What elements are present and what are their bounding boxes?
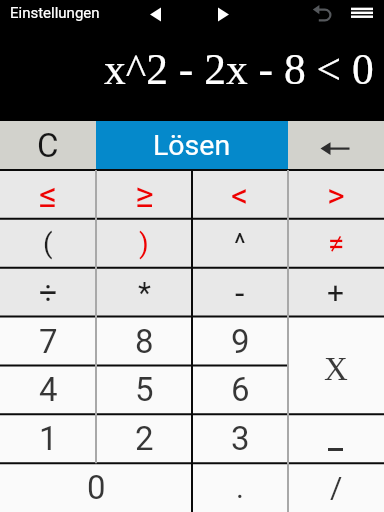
staticText: -: [235, 273, 245, 313]
staticText: /: [330, 470, 343, 505]
button[interactable]: *: [96, 268, 192, 317]
button[interactable]: X: [288, 317, 384, 415]
button[interactable]: -: [192, 268, 288, 317]
staticText: <: [231, 175, 249, 215]
button[interactable]: 4: [0, 365, 96, 414]
staticText: x^2 - 2x - 8 < 0: [104, 45, 374, 93]
staticText: .: [236, 470, 244, 505]
button[interactable]: [344, 0, 380, 28]
staticText: 4: [39, 370, 58, 409]
staticText: ÷: [39, 274, 58, 312]
staticText: 9: [231, 322, 250, 361]
staticText: 5: [135, 370, 154, 409]
button[interactable]: 2: [96, 414, 192, 463]
staticText: 0: [87, 468, 106, 507]
staticText: *: [138, 275, 151, 310]
button[interactable]: ÷: [0, 268, 96, 317]
button[interactable]: [96, 121, 288, 170]
staticText: Lösen: [153, 129, 231, 162]
button[interactable]: [0, 121, 96, 170]
button[interactable]: ≠: [288, 219, 384, 268]
button[interactable]: (: [0, 219, 96, 268]
staticText: 1: [39, 419, 58, 458]
button[interactable]: 8: [96, 317, 192, 366]
button[interactable]: ≥: [96, 170, 192, 219]
button[interactable]: .: [192, 463, 288, 512]
staticText: ≥: [135, 174, 154, 216]
button[interactable]: ): [96, 219, 192, 268]
button[interactable]: 1: [0, 414, 96, 463]
staticText: 7: [39, 322, 58, 361]
button[interactable]: 0: [0, 463, 192, 512]
button[interactable]: C: [0, 121, 96, 170]
button[interactable]: >: [288, 170, 384, 219]
staticText: ^: [234, 227, 246, 260]
button[interactable]: 9: [192, 317, 288, 366]
button[interactable]: ^: [192, 219, 288, 268]
staticText: >: [327, 175, 345, 215]
button[interactable]: Einstellungen: [4, 1, 94, 19]
staticText: X: [324, 351, 348, 388]
staticText: (: [43, 227, 53, 260]
staticText: C: [37, 126, 59, 165]
button[interactable]: [138, 0, 172, 28]
button[interactable]: Lösen: [96, 121, 288, 170]
button[interactable]: 7: [0, 317, 96, 366]
staticText: 8: [135, 322, 154, 361]
staticText: Einstellungen: [10, 4, 100, 22]
staticText: ≠: [328, 226, 345, 261]
button[interactable]: [288, 414, 384, 463]
button[interactable]: 6: [192, 365, 288, 414]
staticText: +: [327, 275, 345, 310]
staticText: ≤: [39, 174, 58, 216]
staticText: 3: [231, 419, 250, 458]
button[interactable]: [308, 0, 338, 28]
button[interactable]: 5: [96, 365, 192, 414]
button[interactable]: +: [288, 268, 384, 317]
staticText: 6: [231, 370, 250, 409]
button[interactable]: /: [288, 463, 384, 512]
button[interactable]: [288, 121, 384, 170]
button[interactable]: [206, 0, 240, 28]
button[interactable]: <: [192, 170, 288, 219]
staticText: ): [139, 227, 149, 260]
button[interactable]: [288, 121, 384, 170]
staticText: 2: [135, 419, 154, 458]
button[interactable]: ≤: [0, 170, 96, 219]
button[interactable]: 3: [192, 414, 288, 463]
